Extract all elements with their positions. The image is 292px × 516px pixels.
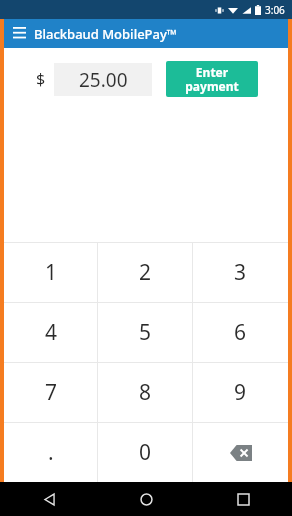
button[interactable]: 2 bbox=[98, 243, 193, 302]
staticText: 7 bbox=[45, 378, 58, 407]
button[interactable]: 8 bbox=[98, 363, 193, 422]
button[interactable]: 25.00 bbox=[54, 63, 152, 96]
button[interactable]: 7 bbox=[4, 363, 98, 422]
button[interactable]: 9 bbox=[193, 363, 288, 422]
button[interactable]: 4 bbox=[4, 303, 98, 362]
staticText: 2 bbox=[139, 258, 152, 287]
staticText: . bbox=[48, 438, 54, 467]
staticText: 1 bbox=[45, 258, 58, 287]
staticText: 5 bbox=[139, 318, 152, 347]
button[interactable]: 1 bbox=[4, 243, 98, 302]
staticText: 3 bbox=[234, 258, 247, 287]
staticText: $ bbox=[36, 68, 46, 90]
button[interactable]: Enter payment bbox=[166, 61, 258, 97]
button[interactable]: 0 bbox=[98, 423, 193, 482]
button[interactable]: Menu bbox=[4, 19, 34, 48]
button[interactable]: . bbox=[4, 423, 98, 482]
button[interactable]: Backspace bbox=[193, 423, 288, 482]
staticText: 6 bbox=[234, 318, 247, 347]
staticText: 0 bbox=[139, 438, 152, 467]
button[interactable]: Back bbox=[0, 482, 98, 516]
button[interactable]: Recents bbox=[195, 482, 292, 516]
staticText: 8 bbox=[139, 378, 152, 407]
staticText: Blackbaud MobilePay™ bbox=[34, 25, 177, 43]
staticText: 25.00 bbox=[79, 67, 128, 93]
staticText: 3:06 bbox=[265, 3, 285, 17]
staticText: Enter payment bbox=[185, 64, 239, 95]
button[interactable]: 6 bbox=[193, 303, 288, 362]
staticText: 9 bbox=[234, 378, 247, 407]
button[interactable]: Home bbox=[98, 482, 195, 516]
staticText: 4 bbox=[45, 318, 58, 347]
button[interactable]: 5 bbox=[98, 303, 193, 362]
button[interactable]: 3 bbox=[193, 243, 288, 302]
